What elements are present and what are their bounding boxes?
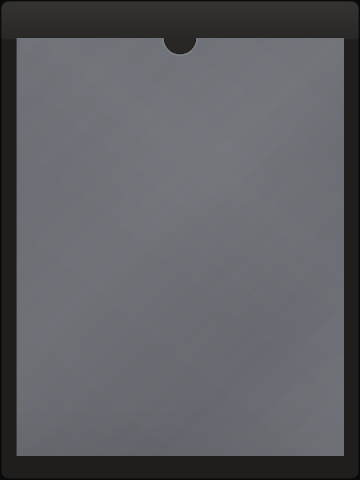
button[interactable]: Phone device mockup (0, 0, 360, 480)
